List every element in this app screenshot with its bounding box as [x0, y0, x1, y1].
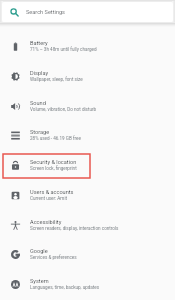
button[interactable]: Display	[0, 61, 175, 91]
button[interactable]: Battery	[0, 31, 175, 61]
staticText: Languages, time, backup, updates	[30, 285, 100, 290]
staticText: Current user: Amit	[30, 196, 68, 201]
button[interactable]: Google	[0, 239, 175, 269]
staticText: Accessibility	[30, 219, 62, 226]
staticText: Security & location	[30, 159, 77, 166]
other: Search	[10, 8, 19, 17]
staticText: Volume, vibration, Do not disturb	[30, 107, 97, 112]
staticText: Search Settings	[26, 9, 65, 16]
button[interactable]: Users & accounts	[0, 180, 175, 210]
button[interactable]: Sound	[0, 91, 175, 121]
staticText: Sound	[30, 100, 46, 107]
button[interactable]: Accessibility	[0, 210, 175, 240]
staticText: 71% – 3h 48m until fully charged	[30, 47, 97, 52]
button[interactable]: System	[0, 269, 175, 299]
staticText: Storage	[30, 129, 50, 136]
button[interactable]: Security & location	[0, 150, 175, 180]
staticText: Users & accounts	[30, 189, 74, 196]
staticText: Battery	[30, 40, 48, 47]
staticText: 28% used - 46.19 GB free	[30, 136, 81, 141]
staticText: System	[30, 278, 49, 285]
button[interactable]: Search	[2, 2, 173, 22]
staticText: Wallpaper, sleep, font size	[30, 77, 83, 82]
staticText: Screen lock, fingerprint	[30, 166, 77, 171]
staticText: Display	[30, 70, 49, 77]
staticText: Screen readers, display, interaction con…	[30, 226, 119, 231]
staticText: Google	[30, 248, 48, 255]
button[interactable]: Storage	[0, 120, 175, 150]
staticText: Services & preferences	[30, 255, 77, 260]
